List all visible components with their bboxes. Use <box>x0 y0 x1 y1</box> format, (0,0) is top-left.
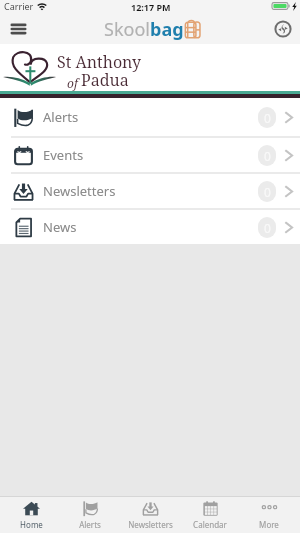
button[interactable]: Alerts <box>61 497 119 533</box>
staticText: Newsletters <box>43 182 116 200</box>
staticText: St Anthony <box>57 51 142 73</box>
staticText: More <box>259 519 279 530</box>
staticText: Calendar <box>193 519 227 530</box>
staticText: Carrier <box>4 0 34 12</box>
button[interactable]: Events <box>0 138 300 172</box>
staticText: News <box>43 218 77 236</box>
staticText: Events <box>43 146 84 164</box>
staticText: 0 <box>264 220 271 236</box>
staticText: 12:17 PM <box>131 1 171 13</box>
staticText: Home <box>20 519 43 530</box>
button[interactable]: Home <box>2 497 60 533</box>
staticText: 0 <box>264 184 271 200</box>
staticText: bag <box>150 17 184 42</box>
staticText: of <box>67 75 81 91</box>
staticText: Newsletters <box>128 519 173 530</box>
button[interactable]: Newsletters <box>0 174 300 208</box>
button[interactable]: Menu <box>0 14 36 44</box>
staticText: Alerts <box>79 519 101 530</box>
staticText: Skool <box>104 17 150 42</box>
staticText: 0 <box>264 110 271 126</box>
button[interactable]: More <box>240 497 298 533</box>
button[interactable]: Calendar <box>181 497 239 533</box>
button[interactable]: Refresh <box>266 14 300 44</box>
staticText: Alerts <box>43 108 79 126</box>
button[interactable]: Alerts <box>0 98 300 136</box>
staticText: 0 <box>264 148 271 164</box>
button[interactable]: News <box>0 210 300 244</box>
button[interactable]: Newsletters <box>121 497 179 533</box>
staticText: Padua <box>81 69 129 91</box>
